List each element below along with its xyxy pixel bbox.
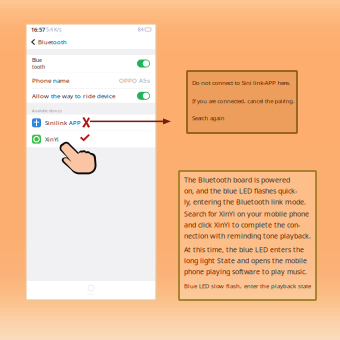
staticText: If you are connected, cancel the pairing… bbox=[192, 97, 295, 105]
staticText: Blue bbox=[32, 57, 42, 63]
button[interactable]: Allow the way to ride device bbox=[26, 89, 156, 103]
staticText: Phone name bbox=[32, 76, 69, 84]
staticText: oppo bbox=[87, 291, 95, 296]
staticText: XinYi bbox=[45, 135, 59, 143]
staticText: phone playing software to play music. bbox=[184, 267, 307, 276]
staticText: Search again bbox=[192, 114, 225, 122]
button[interactable]: Phone name bbox=[26, 72, 156, 88]
staticText: Available devices bbox=[32, 108, 62, 113]
staticText: Bluetooth bbox=[38, 38, 67, 46]
button[interactable]: XinYi bbox=[26, 131, 156, 147]
staticText: OPPO A5s bbox=[119, 76, 150, 84]
staticText: 16:57 bbox=[31, 26, 45, 33]
button[interactable]: Blue bbox=[26, 55, 156, 72]
staticText: 84 bbox=[138, 26, 144, 33]
staticText: Search for XinYi on your mobile phone bbox=[184, 209, 309, 218]
staticText: tooth bbox=[32, 63, 45, 70]
staticText: and click XinYi to complete the con- bbox=[184, 220, 300, 229]
button[interactable]: Toggle bbox=[137, 92, 150, 100]
button[interactable]: Bluetooth bbox=[26, 35, 156, 49]
staticText: 5.4 K/s bbox=[45, 26, 61, 33]
staticText: Sinilink APP bbox=[45, 119, 81, 127]
staticText: nection with reminding tone playback. bbox=[184, 231, 311, 240]
staticText: Blue LED slow flash, enter the playback … bbox=[184, 282, 311, 290]
staticText: Allow the way to ride device bbox=[32, 92, 115, 100]
staticText: on, and the blue LED flashes quick- bbox=[184, 186, 297, 196]
staticText: long light State and opens the mobile bbox=[184, 256, 307, 265]
staticText: At this time, the blue LED enters the bbox=[184, 245, 304, 254]
button[interactable]: Toggle bbox=[137, 59, 150, 67]
staticText: Do not connect to Sini link-APP here, bbox=[192, 78, 290, 87]
staticText: The Bluetooth board is powered bbox=[184, 175, 290, 185]
button[interactable]: Sinilink APP bbox=[26, 115, 156, 131]
staticText: ly, entering the Bluetooth link mode. bbox=[184, 197, 306, 207]
